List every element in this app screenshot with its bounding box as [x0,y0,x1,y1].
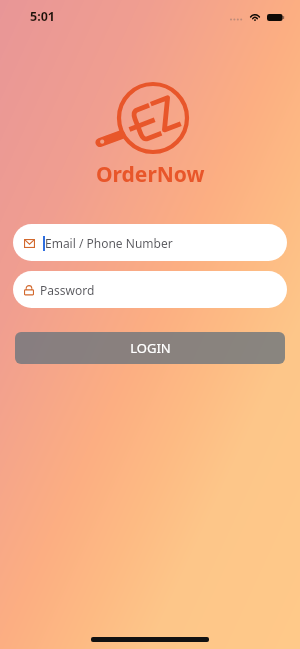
staticText: Password [40,282,95,298]
button[interactable]: LOGIN [15,332,285,364]
staticText: 5:01 [30,8,55,25]
staticText: LOGIN [130,339,171,357]
button[interactable]: Email / Phone Number [13,224,287,261]
button[interactable]: Password [13,271,287,308]
staticText: Email / Phone Number [45,235,173,251]
staticText: OrderNow [96,160,205,189]
